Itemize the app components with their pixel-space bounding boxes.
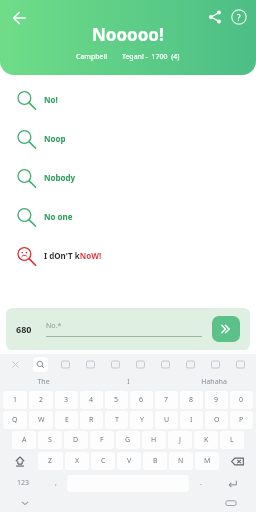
button[interactable]: 123 [3, 472, 44, 494]
staticText: No.* [46, 321, 62, 331]
button[interactable]: O [205, 411, 228, 429]
button[interactable]: No! [6, 83, 250, 116]
button[interactable]: Keyboard tool [203, 356, 228, 372]
button[interactable]: No.* [46, 321, 202, 337]
staticText: Q [12, 415, 18, 425]
staticText: S [48, 435, 52, 445]
button[interactable]: 2 [29, 391, 53, 409]
staticText: N [178, 456, 184, 466]
button[interactable]: Z [38, 452, 63, 470]
staticText: G [125, 435, 131, 445]
button[interactable]: The [0, 374, 86, 390]
button[interactable]: Noop [6, 122, 250, 155]
button[interactable]: E [55, 411, 78, 429]
button[interactable]: Enter [212, 472, 253, 494]
staticText: Noop [44, 133, 66, 144]
button[interactable]: D [64, 431, 88, 449]
button[interactable]: T [105, 411, 128, 429]
button[interactable]: I [86, 374, 171, 390]
staticText: W [38, 415, 45, 425]
button[interactable]: B [143, 452, 167, 470]
staticText: 3 [64, 395, 69, 405]
button[interactable]: G [116, 431, 140, 449]
staticText: Y [140, 415, 144, 425]
button[interactable]: V [117, 452, 141, 470]
staticText: Hahaha [201, 377, 227, 387]
button[interactable]: , [44, 472, 67, 494]
staticText: 1 [13, 395, 18, 405]
button[interactable]: 3 [55, 391, 78, 409]
button[interactable]: W [29, 411, 53, 429]
staticText: C [101, 456, 106, 466]
button[interactable]: Keyboard tool [78, 356, 103, 372]
button[interactable]: 7 [155, 391, 178, 409]
staticText: 8 [189, 395, 194, 405]
button[interactable]: Keyboard tool [53, 356, 78, 372]
staticText: Tegan! - 1700 (4) [122, 52, 180, 62]
button[interactable]: P [230, 411, 253, 429]
button[interactable]: R [80, 411, 103, 429]
staticText: , [55, 478, 57, 488]
button[interactable]: 6 [130, 391, 153, 409]
button[interactable]: J [168, 431, 192, 449]
button[interactable]: M [195, 452, 219, 470]
button[interactable]: 9 [205, 391, 228, 409]
staticText: Campbell [76, 52, 108, 62]
staticText: D [73, 435, 79, 445]
staticText: P [239, 415, 244, 425]
staticText: B [153, 456, 158, 466]
button[interactable]: C [91, 452, 115, 470]
staticText: 6 [139, 395, 144, 405]
button[interactable]: A [12, 431, 36, 449]
button[interactable]: Nobody [6, 161, 250, 194]
button[interactable]: Keyboard tool [128, 356, 153, 372]
staticText: F [100, 435, 104, 445]
button[interactable]: L [220, 431, 244, 449]
staticText: J [179, 435, 181, 445]
button[interactable]: H [142, 431, 166, 449]
button[interactable]: Keyboard tool [228, 356, 253, 372]
button[interactable]: Keyboard tool [178, 356, 203, 372]
button[interactable]: N [169, 452, 193, 470]
button[interactable]: I [180, 411, 203, 429]
button[interactable]: 8 [180, 391, 203, 409]
button[interactable]: S [38, 431, 62, 449]
button[interactable]: Send [212, 316, 240, 342]
button[interactable]: 0 [230, 391, 253, 409]
staticText: Nooooo! [92, 23, 164, 46]
button[interactable]: Share [205, 7, 225, 27]
button[interactable]: 5 [105, 391, 128, 409]
button[interactable]: Hahaha [171, 374, 256, 390]
button[interactable]: Shift [2, 450, 37, 472]
staticText: 7 [164, 395, 169, 405]
button[interactable]: Back [8, 7, 30, 29]
button[interactable]: K [194, 431, 218, 449]
button[interactable]: Keyboard tool [28, 356, 53, 372]
button[interactable]: Switch keyboard [224, 496, 238, 510]
button[interactable]: Backspace [220, 450, 254, 472]
staticText: No! [44, 94, 58, 105]
button[interactable]: Keyboard tool [103, 356, 128, 372]
button[interactable]: X [65, 452, 89, 470]
button[interactable]: 1 [3, 391, 27, 409]
staticText: U [164, 415, 170, 425]
staticText: 9 [214, 395, 219, 405]
button[interactable]: F [90, 431, 114, 449]
button[interactable]: I dOn'T kNoW! [6, 239, 250, 272]
staticText: 5 [114, 395, 119, 405]
staticText: R [89, 415, 94, 425]
button[interactable]: 4 [80, 391, 103, 409]
staticText: T [115, 415, 119, 425]
button[interactable]: Q [3, 411, 27, 429]
button[interactable]: Help [229, 7, 249, 27]
button[interactable]: Hide keyboard [18, 496, 32, 510]
staticText: 4 [89, 395, 94, 405]
staticText: I dOn'T kNoW! [44, 250, 102, 261]
button[interactable]: No one [6, 200, 250, 233]
button[interactable]: U [155, 411, 178, 429]
button[interactable]: Y [130, 411, 153, 429]
button[interactable]: Keyboard tool [153, 356, 178, 372]
button[interactable]: Keyboard tool [3, 356, 28, 372]
